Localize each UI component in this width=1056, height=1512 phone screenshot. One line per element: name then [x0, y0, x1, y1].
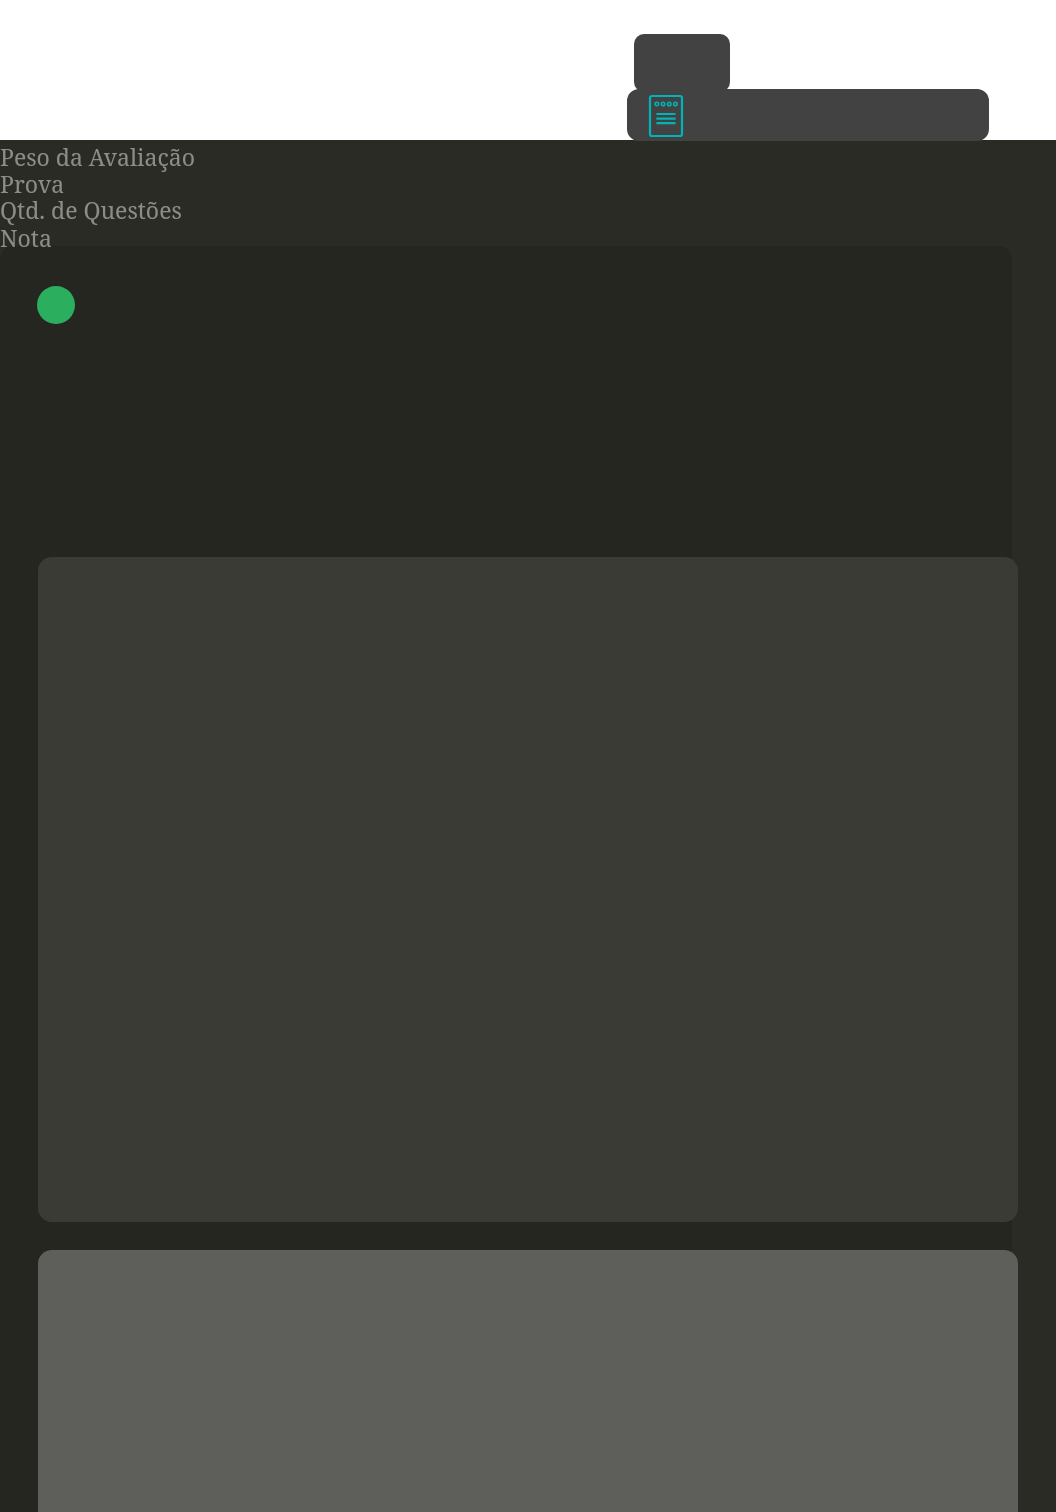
staticText: Prova: [0, 168, 65, 199]
other: Prova: [650, 96, 682, 136]
staticText: Nota: [0, 222, 52, 253]
staticText: Peso da Avaliação: [0, 141, 195, 172]
button[interactable]: Status ativo: [37, 286, 75, 324]
button[interactable]: [634, 34, 730, 92]
staticText: Qtd. de Questões: [0, 194, 182, 225]
button[interactable]: Prova: [627, 89, 989, 141]
